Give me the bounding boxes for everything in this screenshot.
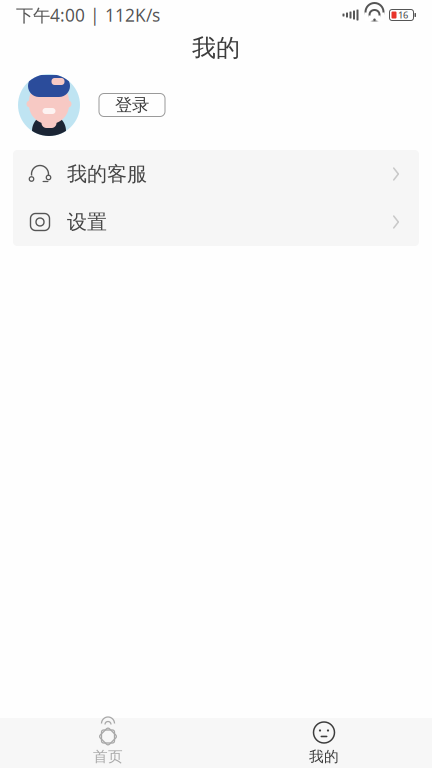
staticText: 我的 bbox=[309, 747, 339, 765]
button[interactable]: 登录 bbox=[99, 93, 165, 116]
staticText: 我的客服 bbox=[67, 162, 147, 186]
button[interactable]: 设置 bbox=[13, 198, 419, 246]
staticText: 首页 bbox=[93, 747, 123, 765]
button[interactable]: 首页 bbox=[0, 718, 216, 768]
staticText: 设置 bbox=[67, 210, 107, 234]
button[interactable]: 我的客服 bbox=[13, 150, 419, 198]
staticText: 下午4:00 | 112K/s bbox=[16, 3, 160, 26]
staticText: 登录 bbox=[115, 94, 149, 116]
staticText: 16 bbox=[398, 9, 408, 21]
staticText: 我的 bbox=[192, 33, 240, 63]
button[interactable]: 我的 bbox=[216, 718, 432, 768]
